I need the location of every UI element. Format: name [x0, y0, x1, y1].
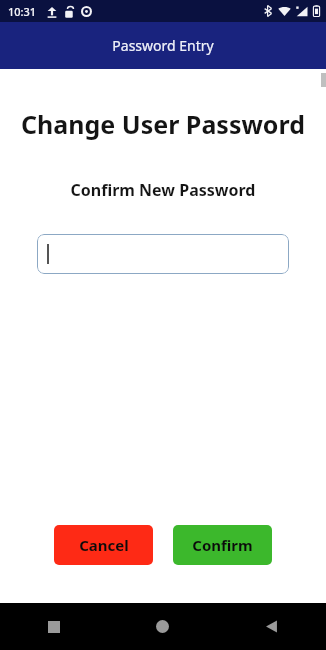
- button[interactable]: Cancel: [54, 525, 153, 565]
- button[interactable]: Recent apps: [0, 603, 108, 650]
- button[interactable]: Back: [217, 603, 326, 650]
- staticText: Password Entry: [112, 36, 214, 55]
- button[interactable]: Home: [108, 603, 217, 650]
- staticText: Cancel: [79, 535, 129, 555]
- staticText: 10:31: [8, 4, 37, 19]
- staticText: Confirm New Password: [0, 179, 326, 201]
- button[interactable]: [37, 234, 289, 274]
- staticText: Change User Password: [4, 107, 322, 141]
- staticText: Confirm: [192, 535, 253, 555]
- button[interactable]: Confirm: [173, 525, 272, 565]
